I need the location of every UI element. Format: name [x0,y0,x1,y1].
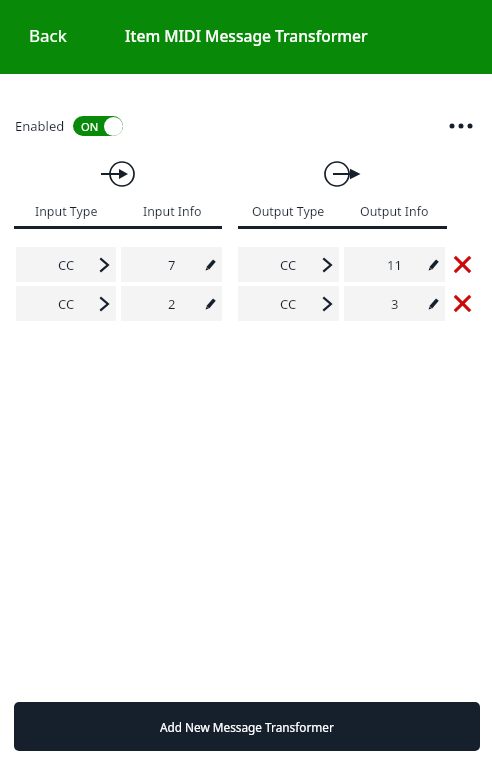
button[interactable]: 3 [344,286,445,321]
staticText: Output Type [252,203,325,220]
button[interactable]: More options [438,103,484,149]
staticText: Input Info [143,203,202,220]
button[interactable]: ON [73,116,123,136]
button[interactable]: CC [16,286,116,321]
staticText: 11 [387,256,402,274]
staticText: 2 [168,295,176,313]
button[interactable]: Delete [445,247,480,282]
button[interactable]: 7 [121,247,222,282]
button[interactable]: Delete [445,286,480,321]
button[interactable]: CC [238,247,339,282]
staticText: Input Type [35,203,98,220]
staticText: CC [280,256,297,274]
staticText: CC [58,256,75,274]
button[interactable]: Add New Message Transformer [14,702,480,751]
staticText: CC [58,295,75,313]
staticText: ON [81,119,99,134]
button[interactable]: Back [24,16,72,55]
staticText: Output Info [360,203,429,220]
staticText: 3 [391,295,399,313]
button[interactable]: CC [238,286,339,321]
staticText: Item MIDI Message Transformer [125,25,368,46]
staticText: CC [280,295,297,313]
staticText: Add New Message Transformer [160,719,334,735]
staticText: Back [29,24,67,47]
staticText: Enabled [15,117,65,135]
button[interactable]: 2 [121,286,222,321]
staticText: 7 [168,256,176,274]
button[interactable]: CC [16,247,116,282]
button[interactable]: 11 [344,247,445,282]
